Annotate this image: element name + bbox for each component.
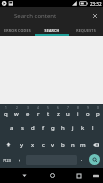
button[interactable]: 7 bbox=[63, 104, 73, 119]
staticText: 23:32 bbox=[90, 1, 102, 7]
staticText: SEARCH bbox=[44, 28, 60, 33]
staticText: c bbox=[42, 141, 45, 149]
staticText: d bbox=[31, 124, 35, 132]
button[interactable]: y bbox=[16, 135, 27, 150]
staticText: o bbox=[86, 110, 90, 118]
staticText: e bbox=[26, 110, 30, 118]
staticText: 0 bbox=[97, 106, 99, 110]
button[interactable]: ?123 bbox=[0, 150, 13, 168]
button[interactable]: 3 bbox=[22, 104, 33, 119]
staticText: r bbox=[37, 110, 40, 118]
button[interactable]: k bbox=[78, 119, 88, 135]
staticText: i bbox=[77, 110, 79, 118]
staticText: q bbox=[4, 110, 8, 118]
button[interactable]: 9 bbox=[83, 104, 93, 119]
staticText: s bbox=[21, 124, 24, 132]
button[interactable]: , bbox=[13, 150, 26, 168]
staticText: 8 bbox=[77, 106, 79, 110]
staticText: l bbox=[92, 124, 94, 132]
button[interactable]: ERROR CODES bbox=[0, 25, 35, 36]
staticText: y bbox=[20, 141, 24, 149]
button[interactable]: s bbox=[17, 119, 28, 135]
staticText: 9 bbox=[87, 106, 89, 110]
button[interactable]: b bbox=[58, 135, 68, 150]
staticText: u bbox=[66, 110, 70, 118]
button[interactable]: SEARCH bbox=[35, 25, 69, 36]
staticText: v bbox=[51, 141, 55, 149]
button[interactable]: Backspace bbox=[88, 135, 103, 150]
staticText: , bbox=[19, 156, 21, 163]
staticText: 6 bbox=[57, 106, 59, 110]
staticText: 7 bbox=[67, 106, 69, 110]
staticText: Search content bbox=[14, 12, 57, 20]
staticText: x bbox=[31, 141, 35, 149]
staticText: 2 bbox=[16, 106, 18, 110]
staticText: a bbox=[10, 124, 14, 132]
staticText: p bbox=[96, 110, 100, 118]
button[interactable]: Switch keyboard bbox=[89, 168, 103, 183]
button[interactable]: Recent apps bbox=[67, 168, 91, 183]
staticText: g bbox=[51, 124, 55, 132]
staticText: 4 bbox=[37, 106, 39, 110]
staticText: 1 bbox=[5, 106, 7, 110]
button[interactable]: m bbox=[78, 135, 88, 150]
staticText: n bbox=[71, 141, 75, 149]
button[interactable]: x bbox=[27, 135, 38, 150]
button[interactable]: 0 bbox=[93, 104, 103, 119]
button[interactable]: c bbox=[38, 135, 48, 150]
staticText: 3 bbox=[27, 106, 29, 110]
button[interactable]: d bbox=[28, 119, 38, 135]
button[interactable]: Clear search bbox=[87, 8, 103, 24]
staticText: w bbox=[14, 110, 19, 118]
button[interactable]: Search bbox=[89, 154, 100, 165]
button[interactable]: Shift bbox=[0, 135, 16, 150]
staticText: ?123 bbox=[3, 158, 11, 163]
button[interactable]: v bbox=[48, 135, 58, 150]
button[interactable]: 5 bbox=[43, 104, 53, 119]
button[interactable]: 4 bbox=[33, 104, 43, 119]
staticText: 5 bbox=[47, 106, 49, 110]
button[interactable]: Home bbox=[40, 168, 64, 183]
staticText: ERROR CODES bbox=[4, 28, 31, 33]
button[interactable]: g bbox=[48, 119, 58, 135]
button[interactable]: 6 bbox=[53, 104, 63, 119]
button[interactable]: a bbox=[6, 119, 17, 135]
button[interactable]: 2 bbox=[11, 104, 22, 119]
button[interactable]: j bbox=[68, 119, 78, 135]
staticText: f bbox=[42, 124, 45, 132]
button[interactable]: 8 bbox=[73, 104, 83, 119]
button[interactable]: Back bbox=[12, 168, 36, 183]
staticText: k bbox=[81, 124, 85, 132]
button[interactable]: . bbox=[77, 150, 86, 168]
button[interactable]: 1 bbox=[0, 104, 11, 119]
button[interactable]: n bbox=[68, 135, 78, 150]
staticText: t bbox=[47, 110, 50, 118]
staticText: z bbox=[57, 110, 60, 118]
staticText: REQUESTS bbox=[76, 28, 96, 33]
staticText: h bbox=[61, 124, 65, 132]
staticText: . bbox=[81, 156, 83, 163]
staticText: m bbox=[80, 141, 86, 149]
button[interactable]: f bbox=[38, 119, 48, 135]
button[interactable]: h bbox=[58, 119, 68, 135]
staticText: j bbox=[72, 124, 74, 132]
staticText: b bbox=[61, 141, 65, 149]
button[interactable]: REQUESTS bbox=[69, 25, 103, 36]
button[interactable]: l bbox=[88, 119, 98, 135]
